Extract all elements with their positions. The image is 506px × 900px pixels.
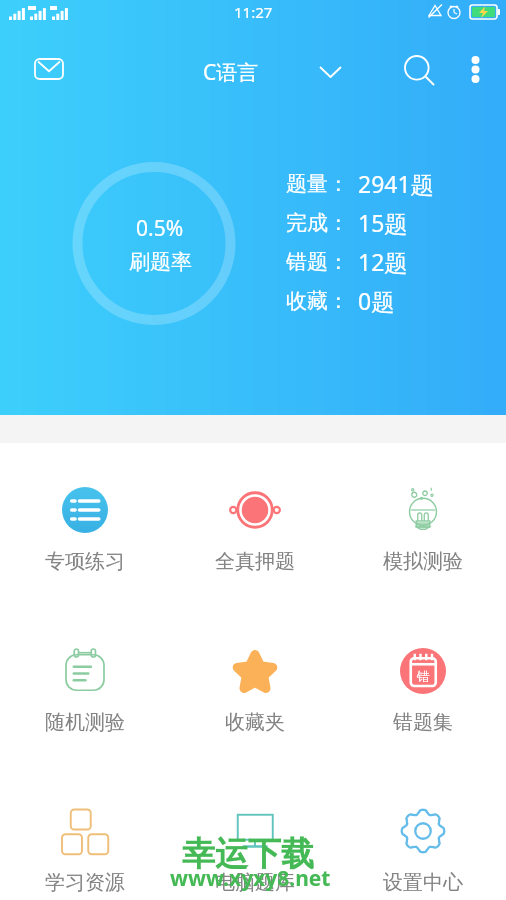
staticText: 随机测验 bbox=[45, 710, 125, 735]
staticText: 设置中心 bbox=[383, 870, 463, 895]
staticText: 刷题率 bbox=[129, 249, 192, 275]
staticText: 0.5% bbox=[136, 214, 184, 243]
staticText: 15题 bbox=[358, 207, 408, 238]
staticText: 幸运下载 bbox=[182, 833, 314, 875]
button[interactable]: 随机测验 bbox=[0, 646, 170, 735]
staticText: www.xyxy8.net bbox=[170, 864, 331, 893]
staticText: 收藏夹 bbox=[225, 710, 285, 735]
staticText: 收藏： bbox=[286, 288, 349, 314]
staticText: 题量： bbox=[286, 171, 349, 197]
button[interactable]: 全真押题 bbox=[170, 485, 340, 574]
staticText: 错 bbox=[417, 668, 430, 684]
staticText: 模拟测验 bbox=[383, 549, 463, 574]
button[interactable]: 模拟测验 bbox=[340, 485, 506, 574]
button[interactable]: 学习资源 bbox=[0, 806, 170, 895]
staticText: 全真押题 bbox=[215, 549, 295, 574]
staticText: C语言 bbox=[203, 58, 259, 87]
button[interactable]: Messages bbox=[28, 48, 70, 90]
button[interactable]: 错 bbox=[340, 646, 506, 735]
staticText: 错题： bbox=[286, 249, 349, 275]
staticText: 12题 bbox=[358, 246, 408, 277]
staticText: 完成： bbox=[286, 210, 349, 236]
button[interactable]: 电脑题库 bbox=[170, 806, 340, 895]
staticText: 2941题 bbox=[358, 168, 434, 199]
staticText: 电脑题库 bbox=[215, 870, 295, 895]
staticText: 专项练习 bbox=[45, 549, 125, 574]
button[interactable]: More options bbox=[458, 52, 492, 86]
staticText: 学习资源 bbox=[45, 870, 125, 895]
button[interactable]: Search bbox=[398, 49, 440, 91]
button[interactable]: Change subject bbox=[308, 50, 352, 94]
staticText: 错题集 bbox=[393, 710, 453, 735]
staticText: 0题 bbox=[358, 285, 395, 316]
button[interactable]: 设置中心 bbox=[340, 806, 506, 895]
staticText: 11:27 bbox=[234, 2, 273, 22]
button[interactable]: 专项练习 bbox=[0, 485, 170, 574]
button[interactable]: 收藏夹 bbox=[170, 646, 340, 735]
